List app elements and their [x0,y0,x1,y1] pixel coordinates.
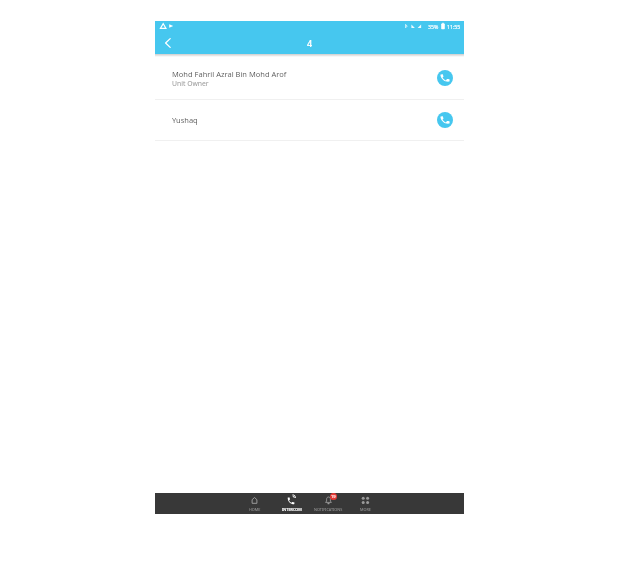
staticText: NOTIFICATIONS [314,507,343,512]
button[interactable]: INTERCOM [273,495,310,512]
button[interactable]: Mohd Fahril Azral Bin Mohd Arof [155,57,464,99]
staticText: 35% [428,23,439,30]
staticText: 4 [307,37,313,49]
button[interactable]: MORE [347,495,384,512]
staticText: INTERCOM [282,507,302,512]
staticText: MORE [360,507,371,512]
staticText: Unit Owner [172,79,209,88]
staticText: 19 [331,494,336,499]
staticText: HOME [249,507,261,512]
button[interactable]: Yushaq [155,100,464,140]
button[interactable]: 19 [310,495,347,512]
button[interactable]: HOME [236,495,273,512]
staticText: Mohd Fahril Azral Bin Mohd Arof [172,69,287,79]
staticText: 11:55 [447,23,461,30]
button[interactable] [161,36,175,50]
button[interactable] [437,70,453,86]
staticText: Yushaq [172,115,198,125]
button[interactable] [437,112,453,128]
